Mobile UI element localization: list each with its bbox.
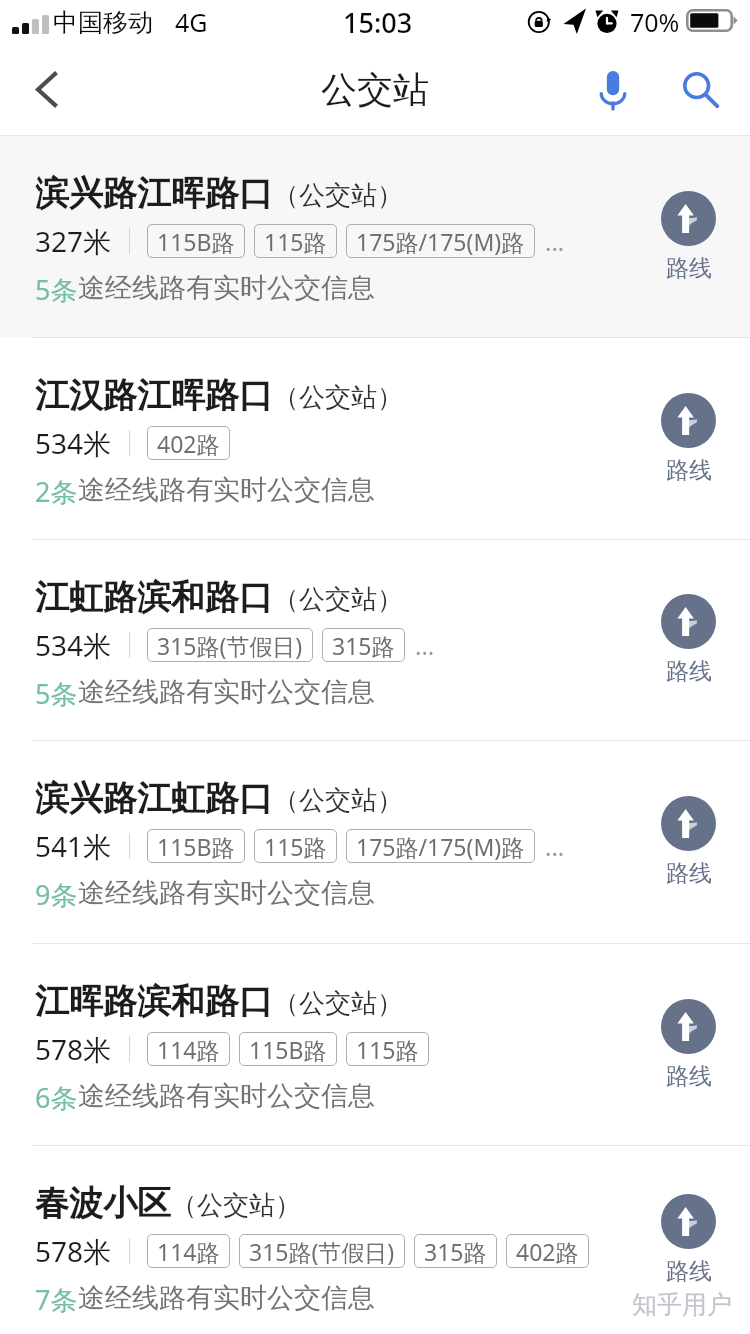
staticText: 534米: [35, 626, 112, 664]
staticText: 4G: [175, 5, 208, 39]
staticText: 402路: [516, 1236, 579, 1267]
button[interactable]: 滨兴路江晖路口: [0, 136, 750, 337]
staticText: 7条: [35, 1281, 78, 1318]
staticText: 知乎用户: [632, 1289, 732, 1320]
staticText: 春波小区: [35, 1182, 171, 1225]
staticText: 115路: [264, 226, 327, 257]
staticText: 江汉路江晖路口: [35, 374, 273, 417]
staticText: ...: [545, 225, 565, 258]
staticText: 70%: [630, 5, 680, 39]
staticText: 路线: [666, 1062, 712, 1091]
staticText: 路线: [666, 859, 712, 888]
staticText: 115B路: [157, 831, 235, 862]
staticText: 途经线路有实时公交信息: [78, 1079, 375, 1113]
button[interactable]: 滨兴路江虹路口: [0, 741, 750, 943]
staticText: 滨兴路江晖路口: [35, 172, 273, 215]
staticText: 中国移动: [53, 7, 153, 38]
staticText: （公交站）: [273, 987, 403, 1020]
button[interactable]: 路线: [661, 191, 716, 283]
staticText: 114路: [157, 1034, 220, 1065]
staticText: 541米: [35, 827, 112, 865]
staticText: 6条: [35, 1079, 78, 1116]
staticText: 途经线路有实时公交信息: [78, 1281, 375, 1315]
staticText: 115B路: [157, 226, 235, 257]
staticText: 15:03: [343, 4, 413, 41]
staticText: （公交站）: [171, 1189, 301, 1222]
button[interactable]: 江晖路滨和路口: [0, 944, 750, 1145]
button[interactable]: 语音搜索: [578, 44, 648, 135]
staticText: 115路: [264, 831, 327, 862]
button[interactable]: 路线: [661, 594, 716, 686]
staticText: 路线: [666, 1257, 712, 1286]
staticText: 江虹路滨和路口: [35, 576, 273, 619]
staticText: 公交站: [321, 67, 429, 112]
staticText: 175路/175(M)路: [356, 831, 525, 862]
staticText: 5条: [35, 271, 78, 308]
staticText: （公交站）: [273, 784, 403, 817]
staticText: 途经线路有实时公交信息: [78, 876, 375, 910]
staticText: 路线: [666, 456, 712, 485]
button[interactable]: 路线: [661, 999, 716, 1091]
staticText: ...: [545, 830, 565, 863]
button[interactable]: 江汉路江晖路口: [0, 338, 750, 539]
staticText: 315路(节假日): [157, 630, 303, 661]
staticText: 578米: [35, 1232, 112, 1270]
staticText: 175路/175(M)路: [356, 226, 525, 257]
staticText: 315路(节假日): [249, 1236, 395, 1267]
staticText: 途经线路有实时公交信息: [78, 473, 375, 507]
button[interactable]: 路线: [661, 796, 716, 888]
button[interactable]: 返回: [0, 44, 90, 135]
staticText: 327米: [35, 222, 112, 260]
staticText: 578米: [35, 1030, 112, 1068]
staticText: 路线: [666, 254, 712, 283]
staticText: 115B路: [249, 1034, 327, 1065]
staticText: 115路: [356, 1034, 419, 1065]
staticText: ...: [415, 629, 435, 662]
button[interactable]: 搜索: [666, 44, 736, 135]
staticText: 534米: [35, 424, 112, 462]
button[interactable]: 路线: [661, 393, 716, 485]
staticText: 滨兴路江虹路口: [35, 777, 273, 820]
staticText: 114路: [157, 1236, 220, 1267]
staticText: 路线: [666, 657, 712, 686]
staticText: 途经线路有实时公交信息: [78, 675, 375, 709]
button[interactable]: 春波小区: [0, 1146, 750, 1334]
staticText: 315路: [332, 630, 395, 661]
staticText: 9条: [35, 876, 78, 913]
staticText: （公交站）: [273, 381, 403, 414]
staticText: 5条: [35, 675, 78, 712]
button[interactable]: 路线: [661, 1194, 716, 1286]
staticText: 2条: [35, 473, 78, 510]
staticText: 途经线路有实时公交信息: [78, 271, 375, 305]
staticText: （公交站）: [273, 179, 403, 212]
staticText: （公交站）: [273, 583, 403, 616]
button[interactable]: 江虹路滨和路口: [0, 540, 750, 740]
staticText: 315路: [424, 1236, 487, 1267]
staticText: 402路: [157, 428, 220, 459]
staticText: 江晖路滨和路口: [35, 980, 273, 1023]
